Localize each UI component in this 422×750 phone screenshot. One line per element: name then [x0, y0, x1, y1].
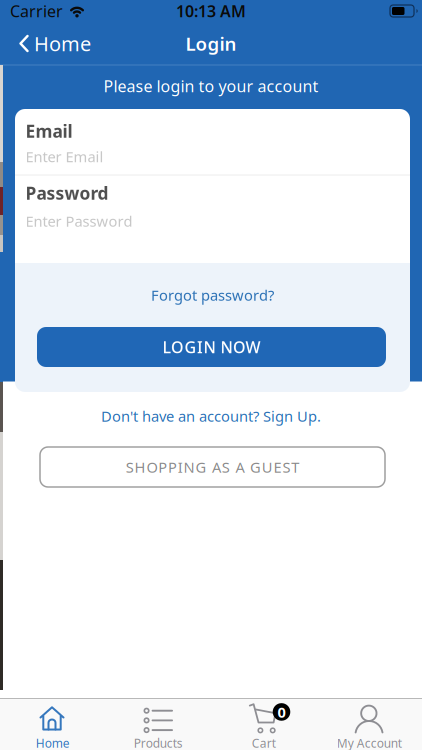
staticText: My Account: [337, 735, 402, 750]
staticText: Login: [185, 31, 236, 56]
staticText: Forgot password?: [151, 285, 274, 305]
staticText: Products: [134, 735, 183, 750]
button[interactable]: Products: [105, 699, 211, 750]
staticText: Home: [36, 735, 70, 750]
staticText: LOGIN NOW: [162, 336, 260, 358]
staticText: Enter Email: [25, 147, 103, 166]
staticText: Password: [25, 181, 108, 204]
staticText: SHOPPING AS A GUEST: [126, 457, 299, 477]
button[interactable]: LOGIN NOW: [37, 327, 386, 367]
staticText: Carrier: [10, 0, 63, 22]
button[interactable]: 0: [211, 699, 316, 750]
button[interactable]: Don't have an account? Sign Up.: [0, 401, 422, 431]
button[interactable]: Home: [0, 699, 105, 750]
button[interactable]: SHOPPING AS A GUEST: [40, 447, 385, 487]
button[interactable]: Forgot password?: [15, 280, 410, 310]
staticText: Enter Password: [25, 211, 132, 231]
staticText: Cart: [252, 735, 276, 750]
button[interactable]: Home: [0, 22, 91, 65]
staticText: Home: [34, 30, 91, 57]
staticText: Email: [25, 119, 72, 142]
staticText: Please login to your account: [103, 75, 318, 97]
button[interactable]: My Account: [316, 699, 422, 750]
staticText: 10:13 AM: [176, 0, 246, 22]
staticText: Don't have an account? Sign Up.: [101, 406, 321, 426]
staticText: 0: [277, 702, 285, 722]
